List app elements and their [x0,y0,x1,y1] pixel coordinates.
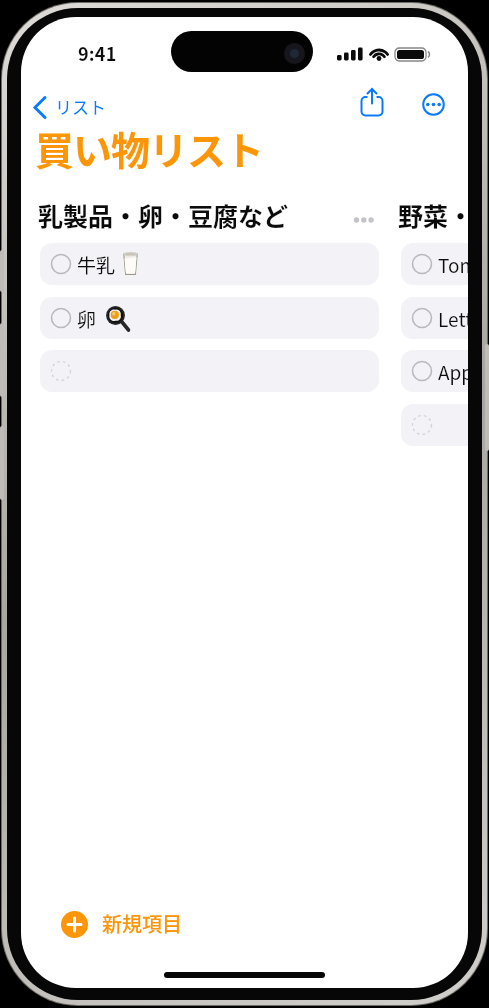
button[interactable] [353,216,378,224]
staticText: Apples [438,358,468,386]
staticText: Lettuce [438,305,468,333]
button[interactable] [32,95,48,120]
staticText: 牛乳 [77,251,116,279]
staticText: 野菜・果物 [398,197,468,233]
button[interactable]: 卵 [40,297,379,339]
button[interactable] [61,911,88,938]
button[interactable]: 牛乳 [40,243,379,285]
staticText: 乳製品・卵・豆腐など [38,197,289,233]
button[interactable]: Lettuce [401,297,468,339]
button[interactable]: 新規項目 [102,909,182,938]
staticText: Tomatoes [438,251,468,279]
button[interactable]: Tomatoes [401,243,468,285]
button[interactable] [422,93,445,116]
staticText: 買い物リスト [35,120,264,176]
button[interactable] [401,404,468,446]
button[interactable] [360,87,384,117]
button[interactable]: Apples [401,350,468,392]
button[interactable]: リスト [55,94,106,119]
staticText: 卵 [77,305,97,333]
staticText: 9:41 [78,40,117,66]
